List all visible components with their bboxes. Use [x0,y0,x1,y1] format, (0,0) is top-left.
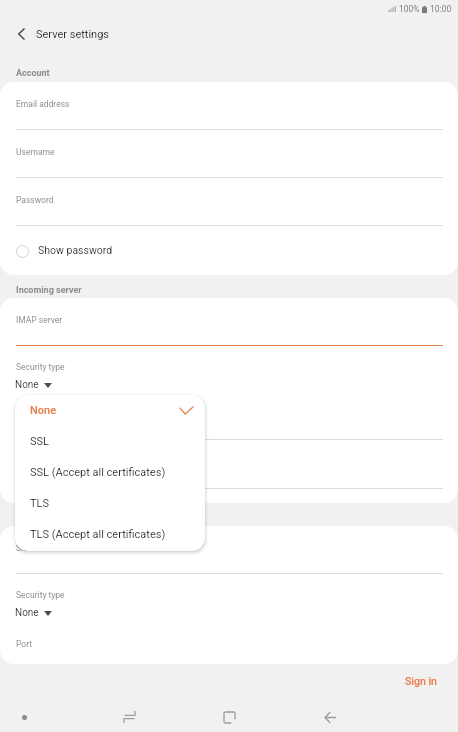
staticText: Security type [16,590,65,600]
staticText: Email address [16,99,70,109]
button[interactable]: Recent apps [107,700,151,732]
staticText: Sign in [405,675,437,687]
staticText: Incoming server [16,285,82,296]
staticText: Port [16,410,33,420]
staticText: 100% [399,4,420,14]
button[interactable]: Back [308,700,352,732]
button[interactable]: Navigate up [7,18,35,50]
staticText: SMTP server [16,543,65,553]
staticText: Password [16,195,54,205]
staticText: Server settings [36,28,110,41]
staticText: TLS [30,497,50,510]
button[interactable]: Port [0,621,458,664]
button[interactable]: Email address [0,82,458,129]
button[interactable]: Sign in [384,668,458,694]
staticText: Show password [38,244,113,256]
staticText: IMAP path prefix [16,458,79,468]
button[interactable]: Username [0,130,458,177]
button[interactable]: Password [0,178,458,225]
button[interactable]: IMAP path prefix [0,440,458,488]
button[interactable]: SMTP server [0,526,458,573]
button[interactable]: SSL [15,426,205,457]
staticText: Account [16,68,50,79]
button[interactable]: Security type [0,346,458,393]
button[interactable]: Hide navigation bar [4,700,44,732]
staticText: Port [16,639,33,649]
staticText: None [15,379,39,391]
button[interactable]: TLS (Accept all certificates) [15,519,205,550]
button[interactable]: Home [207,700,251,732]
staticText: None [15,607,39,619]
staticText: SSL (Accept all certificates) [30,466,166,479]
button[interactable]: Security type [0,574,458,621]
staticText: None [30,404,57,417]
staticText: 10:00 [430,4,452,14]
staticText: IMAP server [16,315,63,325]
staticText: SSL [30,435,49,448]
staticText: TLS (Accept all certificates) [30,528,166,541]
button[interactable]: Port [0,393,458,439]
button[interactable]: Show password [0,226,458,275]
staticText: Username [16,147,55,157]
button[interactable]: None [15,395,205,426]
button[interactable]: TLS [15,488,205,519]
button[interactable]: IMAP server [0,298,458,345]
button[interactable]: SSL (Accept all certificates) [15,457,205,488]
staticText: Security type [16,362,65,372]
